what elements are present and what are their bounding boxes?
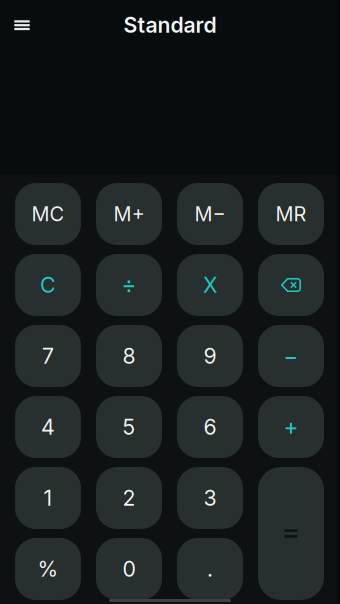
button[interactable]: C xyxy=(15,254,81,316)
button[interactable]: ÷ xyxy=(96,254,162,316)
staticText: MR xyxy=(275,202,306,226)
staticText: Standard xyxy=(123,12,216,38)
staticText: M+ xyxy=(113,202,144,226)
staticText: % xyxy=(37,556,58,582)
staticText: X xyxy=(203,272,217,298)
button[interactable]: Menu xyxy=(0,0,44,47)
staticText: − xyxy=(283,342,298,370)
staticText: . xyxy=(207,556,213,582)
staticText: 8 xyxy=(122,343,135,369)
button[interactable]: . xyxy=(177,538,243,600)
button[interactable]: M− xyxy=(177,183,243,245)
staticText: 3 xyxy=(203,485,216,511)
button[interactable]: Delete xyxy=(258,254,324,316)
button[interactable]: 7 xyxy=(15,325,81,387)
button[interactable]: 0 xyxy=(96,538,162,600)
staticText: MC xyxy=(31,202,64,226)
button[interactable]: M+ xyxy=(96,183,162,245)
staticText: 5 xyxy=(122,414,135,440)
button[interactable]: Equals xyxy=(258,467,324,600)
staticText: 1 xyxy=(43,485,52,511)
staticText: + xyxy=(283,413,298,441)
button[interactable]: + xyxy=(258,396,324,458)
button[interactable]: 5 xyxy=(96,396,162,458)
staticText: C xyxy=(40,272,56,298)
button[interactable]: 3 xyxy=(177,467,243,529)
button[interactable]: MR xyxy=(258,183,324,245)
button[interactable]: 1 xyxy=(15,467,81,529)
staticText: 7 xyxy=(42,343,54,369)
button[interactable]: 2 xyxy=(96,467,162,529)
button[interactable]: 9 xyxy=(177,325,243,387)
button[interactable]: 6 xyxy=(177,396,243,458)
staticText: 9 xyxy=(203,343,216,369)
staticText: 4 xyxy=(41,414,55,440)
staticText: 2 xyxy=(122,485,135,511)
button[interactable]: 4 xyxy=(15,396,81,458)
button[interactable]: % xyxy=(15,538,81,600)
staticText: 6 xyxy=(203,414,216,440)
button[interactable]: 8 xyxy=(96,325,162,387)
staticText: ÷ xyxy=(121,271,136,299)
button[interactable]: X xyxy=(177,254,243,316)
staticText: M− xyxy=(194,202,225,226)
button[interactable]: MC xyxy=(15,183,81,245)
staticText: 0 xyxy=(122,556,135,582)
button[interactable]: − xyxy=(258,325,324,387)
